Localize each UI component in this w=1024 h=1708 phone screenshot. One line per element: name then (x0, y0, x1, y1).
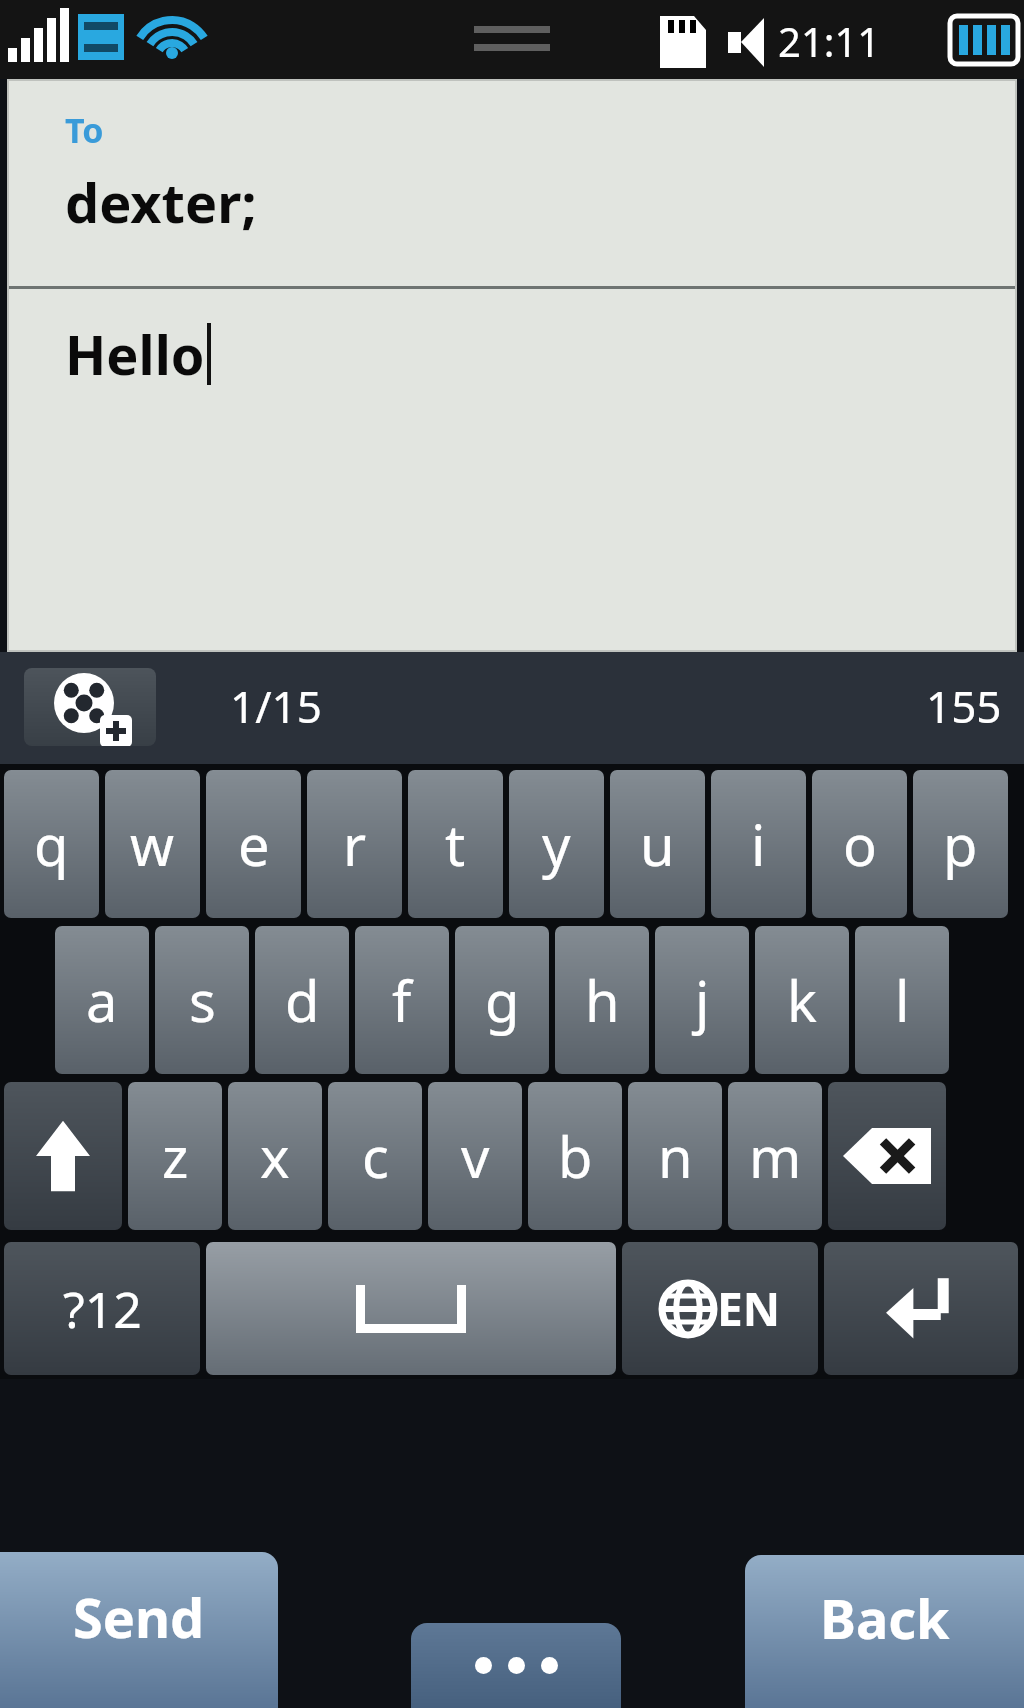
staticText: k (787, 962, 817, 1038)
staticText: Send (73, 1580, 205, 1654)
staticText: g (485, 962, 520, 1038)
button[interactable]: Add attachment (24, 668, 156, 746)
staticText: y (542, 806, 571, 882)
button[interactable]: e (206, 770, 301, 918)
button[interactable]: s (155, 926, 249, 1074)
staticText: To (65, 107, 104, 153)
staticText: t (445, 806, 466, 882)
staticText: o (843, 806, 877, 882)
staticText: e (238, 806, 270, 882)
button[interactable]: b (528, 1082, 622, 1230)
staticText: EN (717, 1277, 781, 1340)
button[interactable]: m (728, 1082, 822, 1230)
button[interactable]: Language EN (622, 1242, 818, 1375)
button[interactable]: r (307, 770, 402, 918)
staticText: u (640, 806, 675, 882)
button[interactable]: l (855, 926, 949, 1074)
staticText: j (695, 962, 710, 1038)
staticText: w (130, 806, 175, 882)
staticText: s (189, 962, 216, 1038)
button[interactable]: i (711, 770, 806, 918)
button[interactable]: j (655, 926, 749, 1074)
staticText: dexter; (65, 165, 257, 239)
staticText: ?12 (63, 1275, 142, 1343)
staticText: n (658, 1118, 693, 1194)
staticText: m (749, 1118, 802, 1194)
button[interactable]: v (428, 1082, 522, 1230)
staticText: q (34, 806, 69, 882)
button[interactable]: Enter (824, 1242, 1018, 1375)
staticText: c (362, 1118, 389, 1194)
staticText: z (162, 1118, 189, 1194)
button[interactable]: ?12 (4, 1242, 200, 1375)
staticText: d (285, 962, 320, 1038)
button[interactable]: u (610, 770, 705, 918)
staticText: 155 (926, 676, 1002, 736)
button[interactable]: w (105, 770, 200, 918)
button[interactable]: c (328, 1082, 422, 1230)
staticText: Back (820, 1581, 950, 1655)
button[interactable]: n (628, 1082, 722, 1230)
staticText: Hello (65, 317, 205, 391)
button[interactable]: p (913, 770, 1008, 918)
button[interactable]: Backspace (828, 1082, 946, 1230)
staticText: i (751, 806, 766, 882)
button[interactable]: q (4, 770, 99, 918)
button[interactable]: z (128, 1082, 222, 1230)
button[interactable]: y (509, 770, 604, 918)
staticText: 1/15 (230, 676, 322, 736)
button[interactable]: To (9, 81, 1015, 286)
button[interactable]: x (228, 1082, 322, 1230)
button[interactable]: Back (745, 1555, 1024, 1708)
button[interactable]: k (755, 926, 849, 1074)
staticText: f (392, 962, 412, 1038)
button[interactable]: f (355, 926, 449, 1074)
staticText: l (895, 962, 910, 1038)
button[interactable]: h (555, 926, 649, 1074)
button[interactable]: g (455, 926, 549, 1074)
staticText: h (585, 962, 620, 1038)
staticText: p (943, 806, 978, 882)
button[interactable]: d (255, 926, 349, 1074)
button[interactable]: o (812, 770, 907, 918)
staticText: r (343, 806, 367, 882)
button[interactable]: t (408, 770, 503, 918)
staticText: v (461, 1118, 490, 1194)
button[interactable]: Send (0, 1552, 278, 1708)
staticText: a (86, 962, 118, 1038)
button[interactable]: Space (206, 1242, 616, 1375)
staticText: 21:11 (778, 14, 881, 68)
staticText: x (260, 1118, 290, 1194)
button[interactable]: More options (411, 1623, 621, 1708)
button[interactable]: a (55, 926, 149, 1074)
staticText: b (558, 1118, 593, 1194)
button[interactable]: Shift (4, 1082, 122, 1230)
button[interactable]: Hello (9, 289, 1015, 650)
